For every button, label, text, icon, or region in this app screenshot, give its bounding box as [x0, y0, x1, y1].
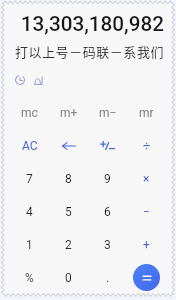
staticText: 0	[65, 271, 72, 285]
staticText: 4	[26, 205, 33, 219]
button[interactable]: Backspace	[49, 129, 88, 162]
staticText: %	[25, 271, 34, 285]
staticText: −	[143, 205, 150, 219]
button[interactable]: History	[12, 72, 28, 88]
staticText: mr	[139, 106, 154, 120]
button[interactable]: 7	[10, 162, 49, 195]
staticText: 5	[65, 205, 72, 219]
button[interactable]: .	[88, 261, 127, 294]
staticText: m+	[60, 106, 78, 120]
staticText: ×	[143, 172, 150, 186]
button[interactable]: +	[127, 228, 166, 261]
button[interactable]: 1	[10, 228, 49, 261]
button[interactable]: −	[127, 195, 166, 228]
staticText: AC	[22, 139, 38, 153]
button[interactable]: %	[10, 261, 49, 294]
button[interactable]: 5	[49, 195, 88, 228]
button[interactable]: mr	[127, 96, 166, 129]
button[interactable]: Equals	[133, 264, 160, 291]
staticText: 1	[26, 238, 33, 252]
button[interactable]: 4	[10, 195, 49, 228]
button[interactable]: 9	[88, 162, 127, 195]
staticText: m−	[99, 106, 117, 120]
staticText: 2	[65, 238, 72, 252]
staticText: 13,303,180,982	[0, 12, 164, 36]
staticText: ÷	[143, 138, 151, 153]
staticText: .	[106, 271, 110, 285]
button[interactable]: 3	[88, 228, 127, 261]
button[interactable]: mc	[10, 96, 49, 129]
button[interactable]: Plus minus	[88, 129, 127, 162]
staticText: +	[143, 238, 150, 252]
staticText: 6	[104, 205, 111, 219]
staticText: 打以上号－码联－系我们	[0, 42, 164, 61]
staticText: 3	[104, 238, 111, 252]
button[interactable]: Scientific functions	[30, 72, 46, 88]
button[interactable]: ×	[127, 162, 166, 195]
button[interactable]: 0	[49, 261, 88, 294]
staticText: mc	[21, 106, 38, 120]
button[interactable]: m−	[88, 96, 127, 129]
button[interactable]: 6	[88, 195, 127, 228]
button[interactable]: m+	[49, 96, 88, 129]
button[interactable]: 2	[49, 228, 88, 261]
button[interactable]: ÷	[127, 129, 166, 162]
button[interactable]: AC	[10, 129, 49, 162]
button[interactable]: 8	[49, 162, 88, 195]
staticText: 7	[26, 172, 33, 186]
staticText: 9	[104, 172, 111, 186]
staticText: 8	[65, 172, 72, 186]
